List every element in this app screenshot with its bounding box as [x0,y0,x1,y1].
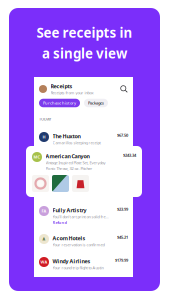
staticText: Windy Airlines [52,258,90,265]
staticText: Your round trip flight to Austin [52,265,103,270]
staticText: Refund [52,220,67,225]
staticText: Picnic Throw, 32 oz. Pitcher [45,166,92,171]
staticText: You'll don't art print on solid free... [52,214,109,219]
staticText: MC [33,154,40,160]
staticText: H [42,134,45,140]
staticText: Acorn Hotels [52,235,85,242]
button[interactable]: FA [34,203,133,229]
staticText: A [42,236,45,242]
staticText: See receipts in [36,24,132,41]
staticText: Your reservation is confirmed [52,242,104,247]
staticText: $67.50 [117,133,128,138]
staticText: Packages [88,100,104,106]
staticText: American Canyon [45,153,89,160]
staticText: The Huxton [52,133,80,140]
staticText: Vintage Inspired Plate Set, Everyday [45,160,105,165]
button[interactable]: Purchase history [39,99,80,107]
staticText: $179.99 [115,258,128,263]
button[interactable]: MC [26,146,142,197]
button[interactable]: A [34,231,133,249]
staticText: Camarillos sleeping receipt [52,140,100,145]
staticText: FA [41,208,46,214]
staticText: Receipts [50,83,72,90]
staticText: Receipts from your inbox [50,90,93,95]
staticText: $23.99 [117,207,128,212]
staticText: WA [40,259,47,265]
button[interactable]: Search [120,85,128,93]
staticText: Fully Artistry [52,207,86,214]
button[interactable]: WA [34,254,133,272]
staticText: Purchase history [43,100,76,106]
staticText: $243.34 [123,153,136,158]
button[interactable]: Packages [84,99,108,107]
staticText: $45.21 [117,235,128,240]
staticText: a single view [42,44,127,62]
staticText: TODAY [39,116,51,122]
button[interactable]: H [34,129,133,147]
